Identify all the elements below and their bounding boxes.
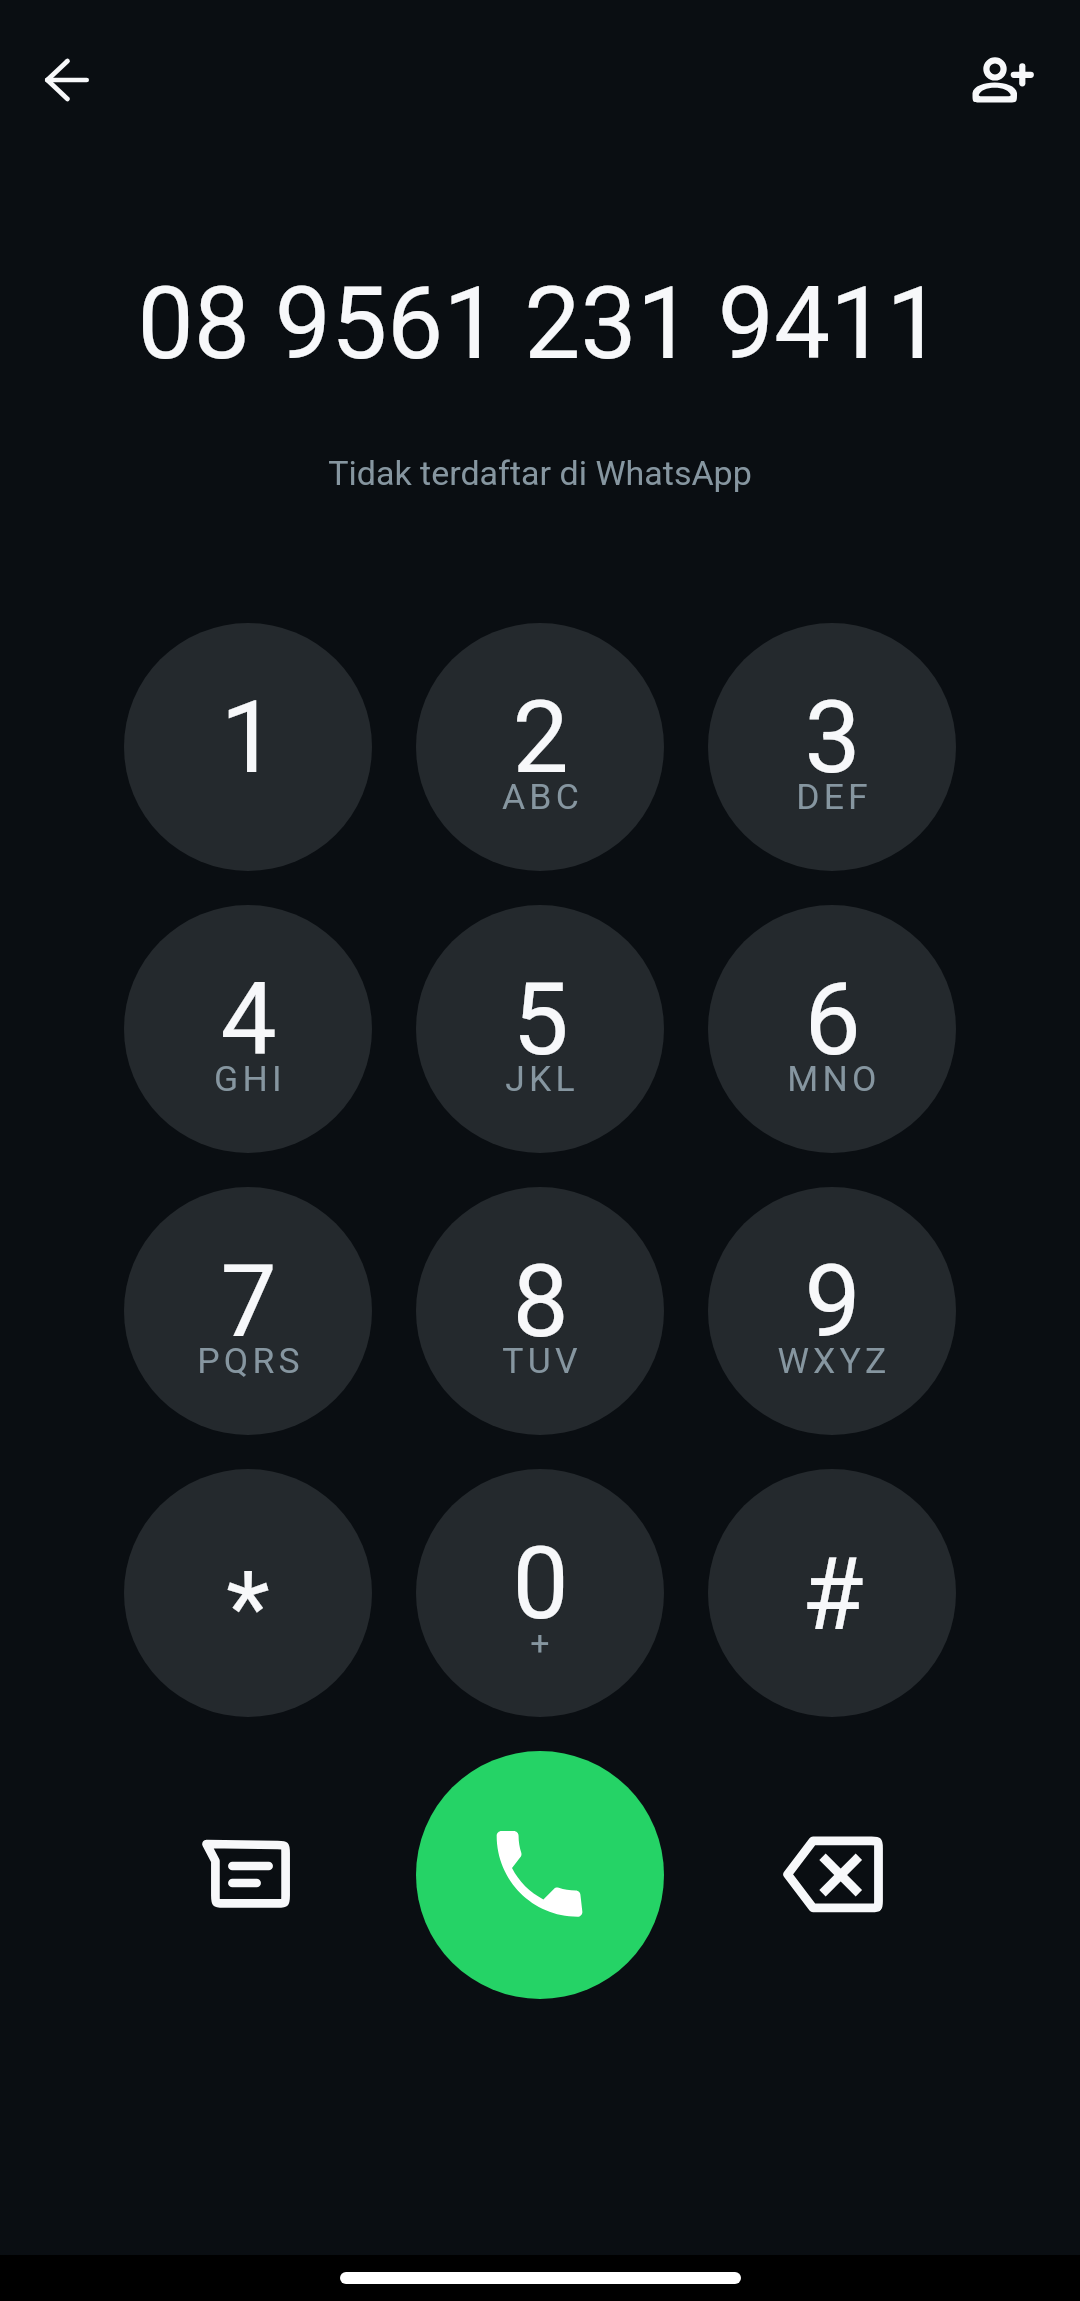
button[interactable]: 2 [416,623,664,871]
button[interactable]: 9 [708,1187,956,1435]
staticText: 9 [804,1243,861,1360]
button[interactable]: Add contact [955,32,1051,128]
staticText: JKL [505,1058,579,1100]
staticText: PQRS [197,1340,304,1382]
staticText: + [530,1623,550,1663]
staticText: 08 9561 231 9411 [137,265,943,382]
button[interactable]: Call [416,1751,664,1999]
staticText: 2 [512,679,569,796]
staticText: WXYZ [777,1340,891,1382]
button[interactable]: 8 [416,1187,664,1435]
staticText: 5 [512,961,569,1078]
staticText: DEF [796,776,872,818]
staticText: MNO [787,1058,881,1100]
staticText: GHI [214,1058,286,1100]
staticText: 4 [220,961,277,1078]
button[interactable]: 1 [124,623,372,871]
button[interactable]: * [124,1469,372,1717]
staticText: # [801,1535,864,1653]
button[interactable]: 0 [416,1469,664,1717]
staticText: ABC [502,776,583,818]
button[interactable]: Back [19,32,115,128]
staticText: 8 [512,1243,569,1360]
button[interactable]: 6 [708,905,956,1153]
staticText: 3 [804,679,861,796]
staticText: * [226,1548,270,1666]
button[interactable]: 5 [416,905,664,1153]
staticText: 6 [804,961,861,1078]
button[interactable]: 3 [708,623,956,871]
button[interactable]: # [708,1469,956,1717]
staticText: 1 [220,679,277,796]
staticText: TUV [502,1340,582,1382]
button[interactable]: 7 [124,1187,372,1435]
staticText: Tidak terdaftar di WhatsApp [328,453,752,493]
staticText: 0 [512,1525,569,1642]
button[interactable]: 4 [124,905,372,1153]
button[interactable]: Backspace [773,1814,893,1934]
button[interactable]: Send message [186,1816,306,1936]
staticText: 7 [220,1243,277,1360]
